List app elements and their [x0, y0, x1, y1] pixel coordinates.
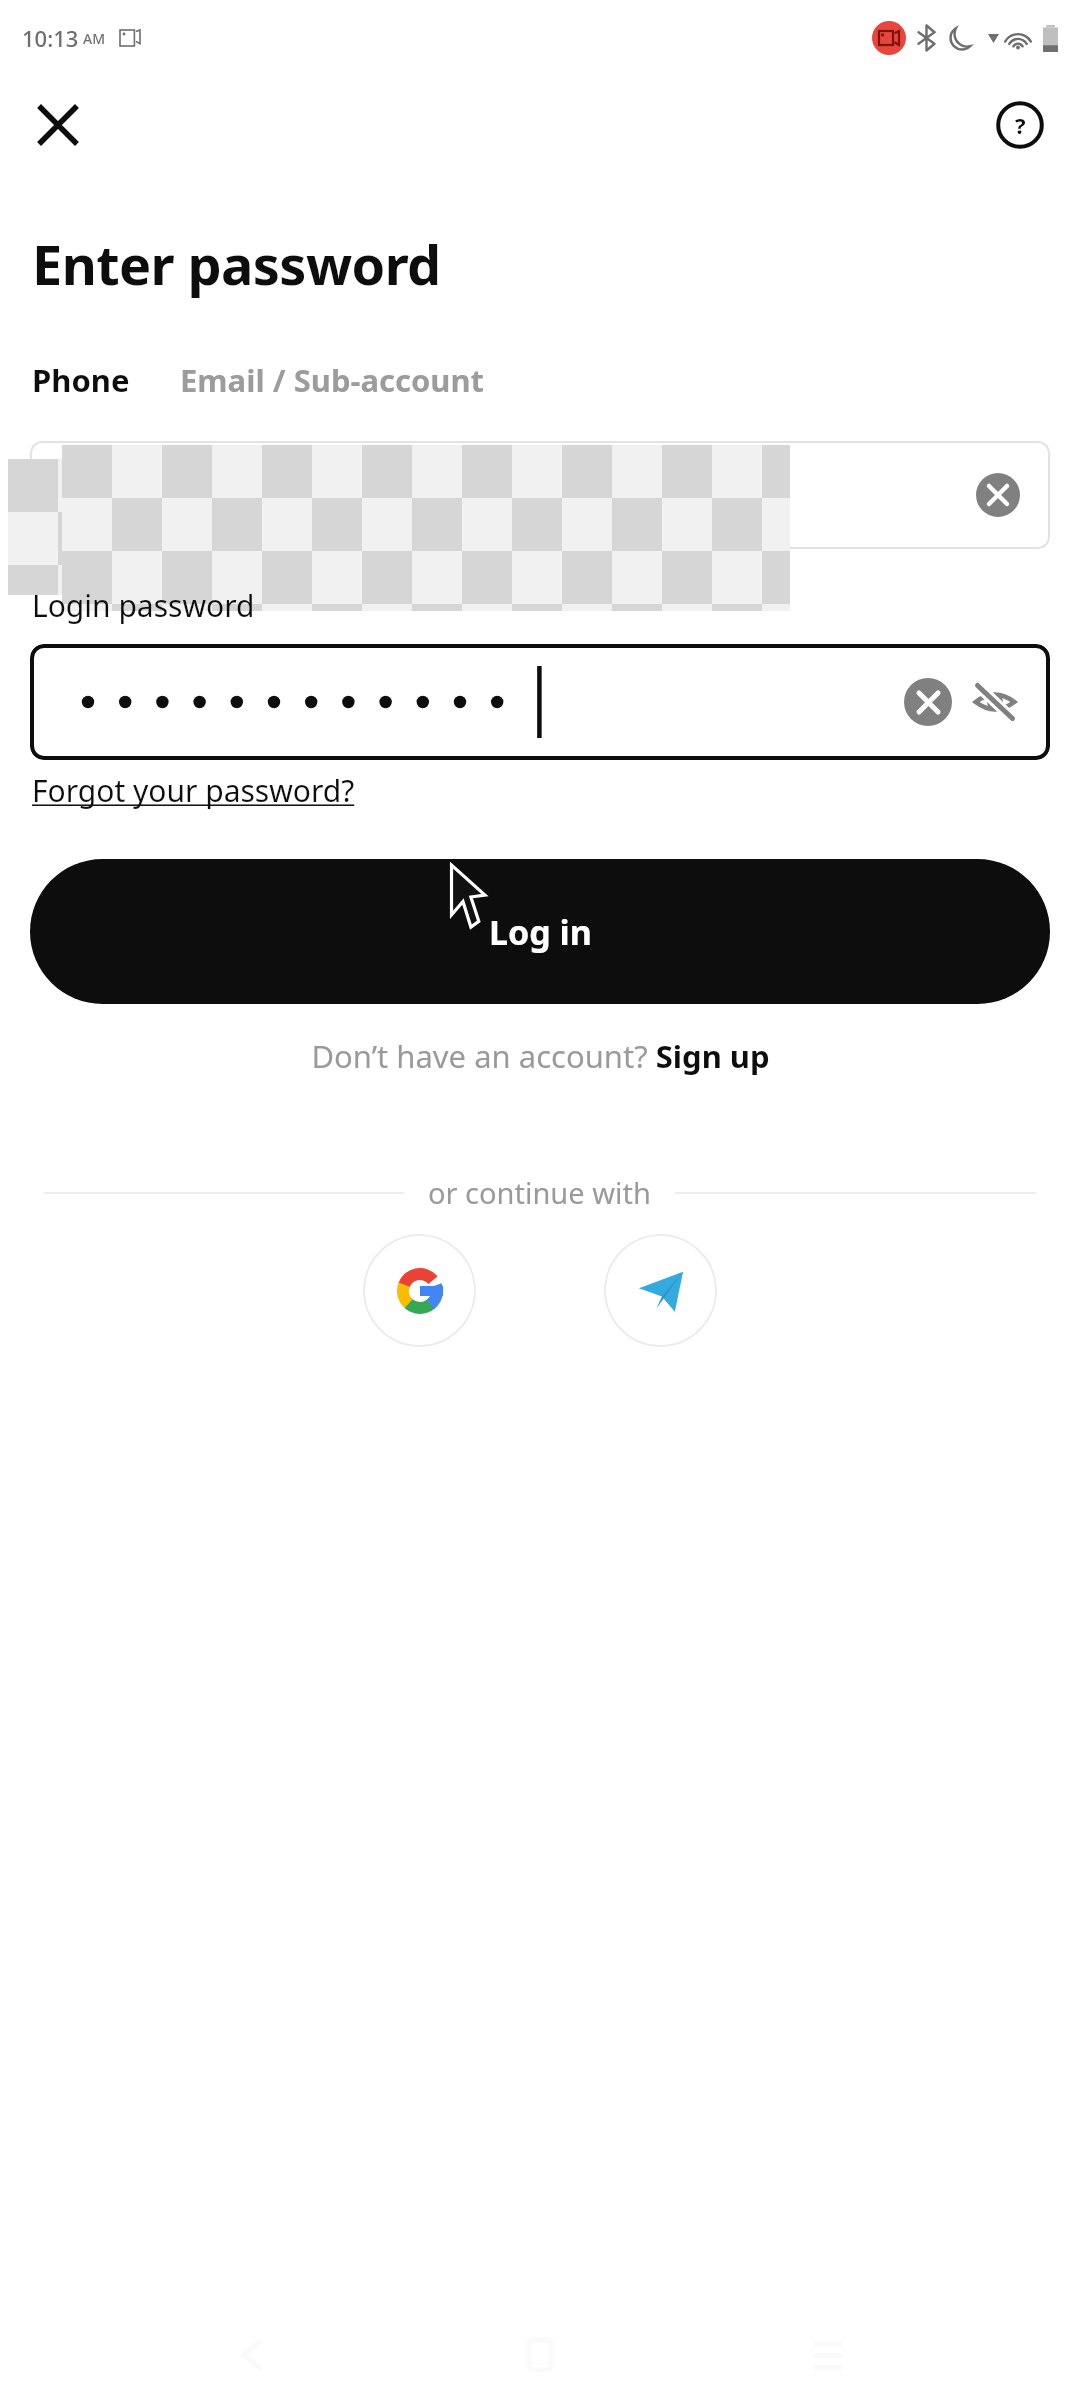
staticText: 10:13 [22, 23, 79, 53]
staticText: or continue with [428, 1173, 651, 1212]
button[interactable]: Close [28, 95, 88, 155]
staticText: Don’t have an account? Sign up [311, 1035, 770, 1077]
staticText: AM [83, 29, 106, 48]
button[interactable]: Show password [966, 673, 1024, 731]
button[interactable]: Forgot your password? [32, 770, 355, 811]
button[interactable]: Clear phone number [976, 473, 1020, 517]
button[interactable]: Help [990, 95, 1050, 155]
staticText: Enter password [32, 227, 441, 301]
staticText: Email / Sub-account [180, 359, 485, 401]
button[interactable]: Continue with Telegram [604, 1234, 717, 1347]
staticText: Forgot your password? [32, 770, 355, 811]
staticText: Login password [32, 585, 255, 626]
button[interactable]: Email / Sub-account [178, 353, 487, 407]
button[interactable]: Clear password [30, 644, 1050, 760]
button[interactable]: Continue with Google [363, 1234, 476, 1347]
button[interactable]: Don’t have an account? Sign up [305, 1029, 776, 1083]
button[interactable]: Phone [30, 353, 132, 407]
staticText: Phone [32, 359, 130, 401]
button[interactable]: Log in [30, 859, 1050, 1004]
button[interactable]: Clear phone number [30, 441, 1050, 549]
staticText: ? [1015, 110, 1026, 140]
button[interactable]: Clear password [904, 678, 952, 726]
staticText: Log in [489, 909, 592, 955]
